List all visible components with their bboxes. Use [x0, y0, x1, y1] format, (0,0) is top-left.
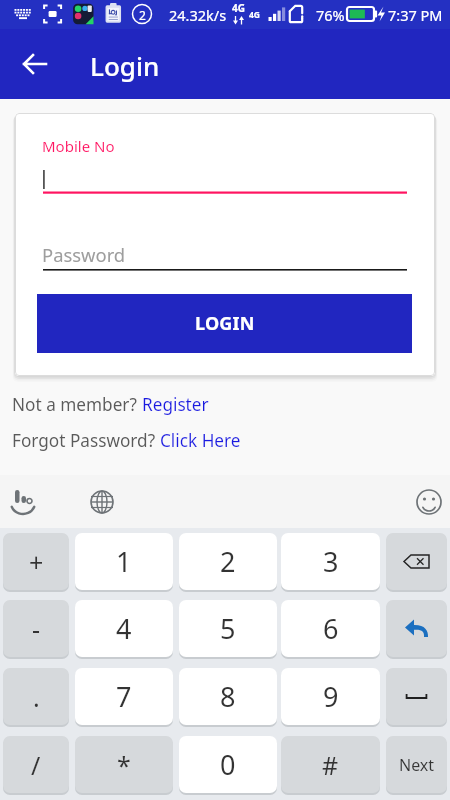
staticText: 7 [116, 678, 132, 715]
staticText: 0 [220, 746, 236, 783]
staticText: 2 [220, 543, 236, 580]
button[interactable] [386, 533, 447, 590]
staticText: 4 [116, 610, 132, 647]
staticText: 3 [323, 543, 339, 580]
button[interactable]: 4 [75, 600, 173, 657]
staticText: 6 [323, 610, 339, 647]
button[interactable]: 2 [179, 533, 277, 590]
staticText: + [29, 545, 44, 579]
button[interactable] [386, 600, 447, 657]
button[interactable]: 8 [179, 668, 277, 725]
button[interactable]: 0 [179, 736, 277, 793]
staticText: LOGIN [195, 311, 255, 336]
staticText: 4G [232, 1, 245, 15]
staticText: 1 [116, 543, 132, 580]
staticText: Next [399, 754, 435, 776]
button[interactable] [386, 668, 447, 725]
button[interactable]: / [3, 736, 69, 793]
button[interactable]: # [281, 736, 380, 793]
button[interactable]: . [3, 668, 69, 725]
staticText: * [117, 748, 131, 782]
staticText: 9 [323, 678, 339, 715]
staticText: 4G [249, 9, 261, 21]
staticText: Register [142, 393, 209, 416]
button[interactable]: Forgot Password? [12, 429, 241, 452]
staticText: / [31, 748, 41, 782]
staticText: 5 [220, 610, 236, 647]
button[interactable]: * [75, 736, 173, 793]
button[interactable]: 7 [75, 668, 173, 725]
button[interactable]: Keyboard settings [2, 481, 44, 523]
button[interactable]: LOGIN [37, 294, 412, 353]
staticText: Not a member? [12, 393, 142, 416]
staticText: . [33, 680, 40, 714]
button[interactable]: Emoji [408, 481, 450, 523]
staticText: 24.32k/s [169, 5, 227, 25]
button[interactable]: 6 [281, 600, 380, 657]
button[interactable]: + [3, 533, 69, 590]
staticText: 7:37 PM [388, 5, 443, 25]
staticText: 8 [220, 678, 236, 715]
staticText: Forgot Password? [12, 429, 160, 452]
button[interactable]: 3 [281, 533, 380, 590]
staticText: Password [42, 242, 126, 267]
staticText: # [322, 748, 339, 782]
staticText: Click Here [160, 429, 241, 452]
staticText: - [32, 612, 41, 646]
staticText: 2 [139, 7, 146, 23]
button[interactable]: 1 [75, 533, 173, 590]
button[interactable]: Back [11, 40, 59, 88]
button[interactable]: 5 [179, 600, 277, 657]
button[interactable]: 9 [281, 668, 380, 725]
button[interactable]: Change language [81, 481, 123, 523]
button[interactable]: Not a member? [12, 393, 209, 416]
staticText: Mobile No [42, 136, 115, 156]
button[interactable]: - [3, 600, 69, 657]
button[interactable]: Next [386, 736, 447, 793]
staticText: 76% [316, 5, 345, 25]
staticText: Login [90, 48, 160, 83]
